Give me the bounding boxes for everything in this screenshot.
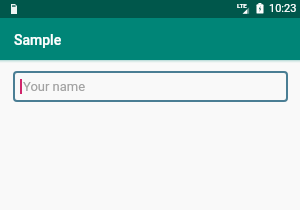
button[interactable]: Your name xyxy=(13,71,288,102)
staticText: Sample xyxy=(14,32,62,48)
other: Battery charging xyxy=(256,3,265,14)
staticText: 10:23 xyxy=(269,2,297,15)
other: Notification xyxy=(11,4,17,14)
staticText: LTE xyxy=(237,2,247,9)
other: Mobile signal xyxy=(242,7,250,15)
staticText: Your name xyxy=(23,79,86,94)
